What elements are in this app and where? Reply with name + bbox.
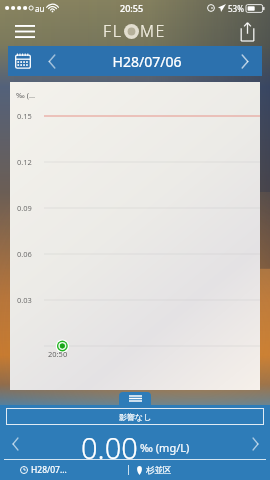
staticText: 杉並区	[146, 465, 172, 476]
button[interactable]: 影響なし	[6, 408, 264, 425]
staticText: 0.03	[17, 295, 32, 305]
button[interactable]: Menu	[8, 18, 42, 44]
staticText: au	[35, 3, 45, 14]
staticText: 0.15	[17, 111, 32, 121]
button[interactable]: Expand panel	[119, 392, 151, 405]
button[interactable]: Next reading	[240, 428, 270, 459]
button[interactable]: Previous reading	[0, 428, 30, 459]
staticText: 53%	[228, 3, 244, 14]
staticText: H28/07/06	[66, 52, 228, 71]
staticText: FL	[103, 20, 123, 42]
button[interactable]: Next day	[228, 46, 262, 76]
staticText: 20:50	[48, 349, 68, 359]
staticText: 影響なし	[119, 412, 152, 422]
staticText: 0.06	[17, 249, 32, 259]
staticText: H28/07...	[31, 464, 67, 476]
staticText: ‰ (...	[16, 90, 36, 100]
button[interactable]: Share	[232, 17, 262, 45]
button[interactable]: Calendar	[8, 46, 38, 76]
staticText: 0.09	[17, 203, 32, 213]
staticText: ME	[140, 20, 167, 42]
staticText: 0.00	[81, 428, 138, 459]
staticText: 0.12	[17, 157, 32, 167]
button[interactable]: Previous day	[38, 46, 66, 76]
staticText: ‰ (mg/L)	[140, 440, 190, 455]
staticText: 20:55	[120, 2, 144, 14]
